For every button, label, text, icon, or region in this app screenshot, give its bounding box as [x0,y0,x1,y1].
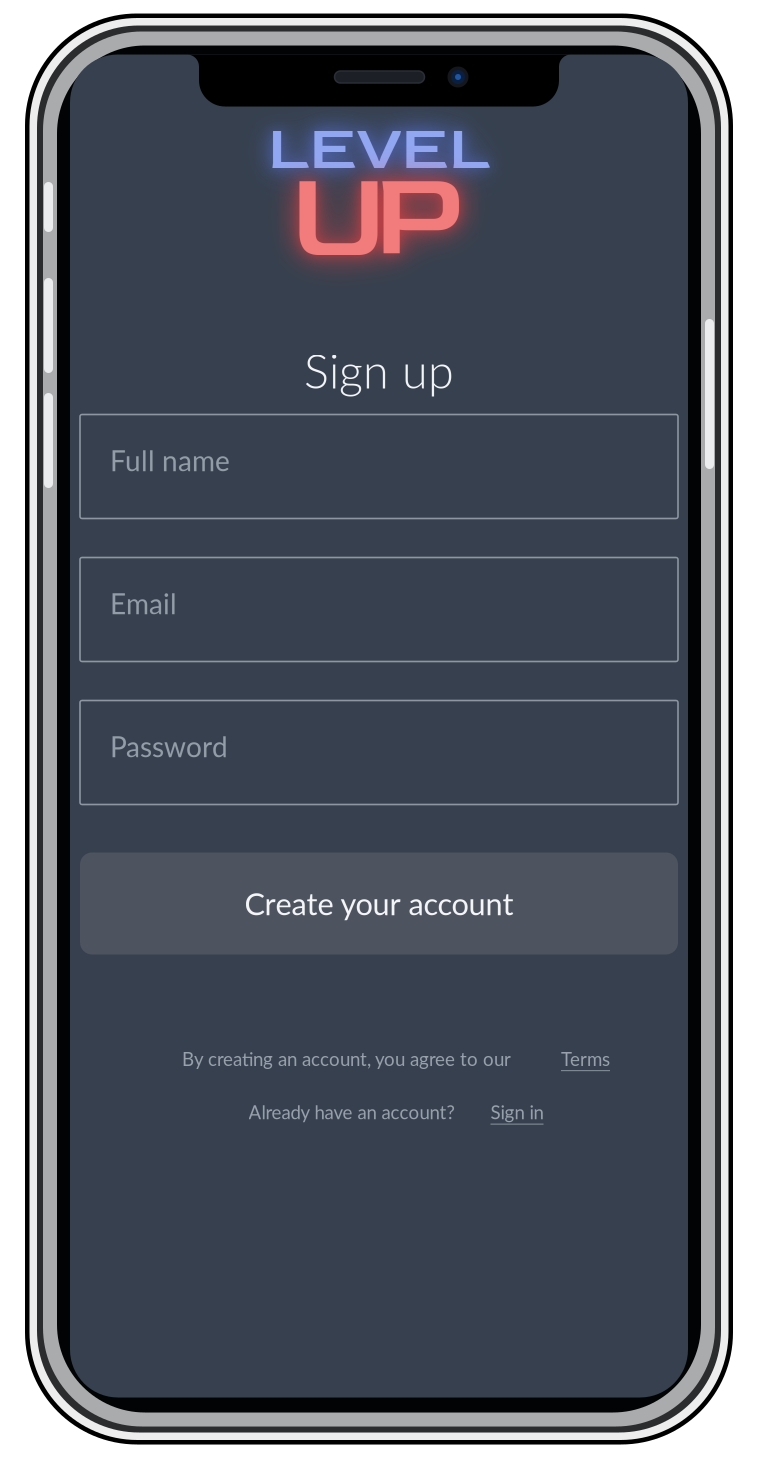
button[interactable]: Sign in [490,1101,543,1123]
staticText: Full name [110,444,230,477]
staticText: LEVEL [267,113,490,186]
staticText: Create your account [244,885,513,922]
button[interactable]: Terms [561,1047,610,1070]
button[interactable]: Create your account [80,852,678,954]
staticText: By creating an account, you agree to our [182,1047,511,1070]
staticText: Password [110,730,228,763]
staticText: Sign in [490,1101,543,1123]
staticText: Email [110,587,177,620]
staticText: Terms [561,1047,610,1070]
staticText: UP [291,143,466,290]
staticText: Sign up [304,342,454,398]
staticText: Already have an account? [248,1101,454,1123]
